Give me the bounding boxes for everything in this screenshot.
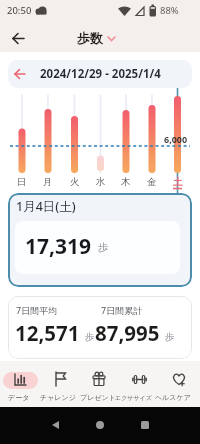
button[interactable]: 1月4日(土): [8, 193, 192, 287]
staticText: 歩: [165, 331, 175, 343]
button[interactable]: 2024/12/29 - 2025/1/4: [8, 60, 192, 88]
staticText: 水: [96, 176, 106, 188]
button[interactable]: 歩数: [77, 27, 116, 49]
staticText: エクササイズ: [115, 394, 152, 402]
staticText: 7日間累計: [101, 304, 143, 316]
button[interactable]: [40, 361, 80, 407]
button[interactable]: 7日間平均: [8, 296, 192, 359]
staticText: ヘルスケア: [155, 393, 191, 402]
button[interactable]: [6, 26, 30, 50]
staticText: 土: [173, 176, 183, 188]
staticText: 2024/12/29 - 2025/1/4: [40, 66, 161, 82]
button[interactable]: [80, 361, 120, 407]
staticText: データ: [8, 393, 30, 402]
staticText: 歩: [98, 241, 109, 254]
staticText: チャレンジ: [40, 393, 76, 402]
staticText: 87,995: [95, 319, 160, 347]
button[interactable]: [120, 361, 160, 407]
staticText: 日: [17, 176, 27, 188]
staticText: 6,000: [164, 133, 188, 145]
staticText: 歩: [85, 331, 95, 343]
staticText: 88%: [160, 4, 179, 17]
staticText: 月: [43, 176, 53, 188]
staticText: 12,571: [15, 319, 80, 347]
staticText: 木: [121, 176, 131, 188]
staticText: プレゼント: [80, 393, 116, 402]
staticText: 7日間平均: [16, 304, 58, 316]
staticText: 火: [70, 176, 80, 188]
staticText: 1月4日(土): [16, 198, 76, 215]
staticText: 金: [147, 176, 157, 188]
staticText: 17,319: [25, 232, 92, 261]
button[interactable]: [0, 361, 40, 407]
button[interactable]: [160, 361, 200, 407]
staticText: 20:50: [7, 4, 32, 17]
staticText: 歩数: [77, 30, 103, 46]
